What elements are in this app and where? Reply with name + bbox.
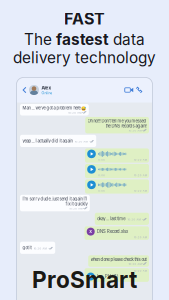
staticText: 10:20 AM <box>128 129 141 132</box>
staticText: 10:20 AM <box>128 262 141 266</box>
staticText: 10:20 AM <box>134 236 147 239</box>
staticText: 0:06 <box>98 158 105 161</box>
staticText: got it <box>22 245 31 250</box>
staticText: Online <box>41 91 52 95</box>
staticText: yeap... I actually did it again <box>22 138 72 143</box>
button[interactable]: Video call <box>123 84 134 96</box>
staticText: DNS Record.xlsx <box>97 229 128 234</box>
staticText: okay ... last time <box>97 216 125 221</box>
staticText: when done please check this out <box>91 257 147 262</box>
staticText: 10:20 AM <box>75 140 88 143</box>
button[interactable]: Alex, online <box>29 85 52 95</box>
staticText: FAST <box>64 9 105 28</box>
staticText: 10:20 AM <box>34 247 47 250</box>
staticText: X <box>89 229 92 234</box>
staticText: The fastest data <box>24 30 145 48</box>
staticText: I'm sorry dude, just send it again I'll <box>22 196 87 201</box>
staticText: delivery technology <box>13 48 156 67</box>
staticText: 10:20 AM <box>127 218 140 221</box>
staticText: Man ... we've got a problem here 😅 <box>22 106 86 111</box>
staticText: 10:20 AM <box>134 158 147 161</box>
staticText: 10:20 AM <box>68 111 81 114</box>
staticText: Alex <box>41 85 51 91</box>
button[interactable]: Voice call <box>134 84 143 96</box>
staticText: Oh no!!! Don't tell me you messed <box>88 118 147 123</box>
staticText: 0:06 <box>98 174 105 177</box>
staticText: ProSmart <box>32 266 137 293</box>
button[interactable]: Back <box>20 84 29 96</box>
staticText: fix it quickly <box>65 201 87 206</box>
staticText: 10:20 AM <box>69 207 82 210</box>
staticText: 10:20 AM <box>134 269 147 272</box>
staticText: log_PH (6) <box>97 274 119 279</box>
staticText: 10:20 AM <box>134 174 147 177</box>
staticText: 0:06 <box>98 189 105 192</box>
staticText: the DNS records again! <box>106 123 147 128</box>
staticText: 10:20 AM <box>134 189 147 192</box>
